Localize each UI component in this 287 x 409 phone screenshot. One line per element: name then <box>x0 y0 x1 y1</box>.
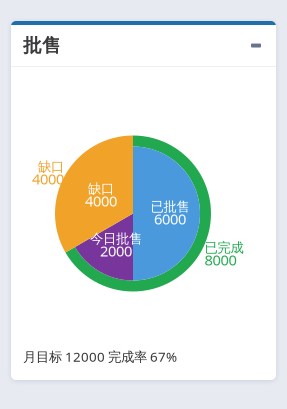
staticText: 批售 <box>23 34 61 57</box>
staticText: 4000 <box>85 191 117 210</box>
staticText: 缺口 <box>88 181 114 197</box>
staticText: 8000 <box>204 250 236 269</box>
staticText: 6000 <box>154 209 186 228</box>
staticText: 月目标 12000 完成率 67% <box>23 348 177 365</box>
button[interactable]: Collapse section <box>242 31 270 59</box>
staticText: 已完成 <box>204 240 243 256</box>
staticText: 已批售 <box>150 199 189 215</box>
staticText: 2000 <box>100 241 132 260</box>
staticText: 今日批售 <box>90 231 142 247</box>
staticText: 4000 <box>32 169 64 188</box>
staticText: 缺口 <box>38 159 64 175</box>
